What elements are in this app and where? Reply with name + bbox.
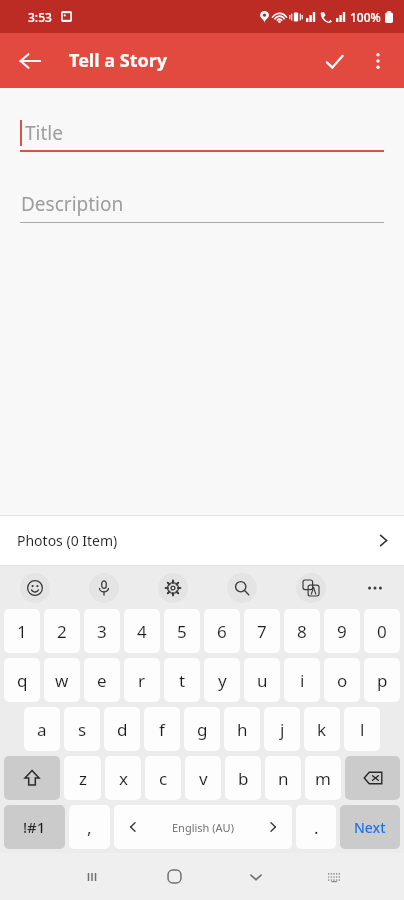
staticText: 9 (337, 620, 347, 643)
button[interactable]: m (305, 756, 341, 800)
button[interactable]: Hide keyboard (215, 853, 297, 900)
button[interactable]: Description (20, 185, 384, 223)
button[interactable]: s (64, 707, 100, 751)
button[interactable]: g (184, 707, 220, 751)
staticText: o (337, 669, 348, 692)
button[interactable]: f (144, 707, 180, 751)
staticText: z (79, 767, 87, 790)
button[interactable]: t (164, 658, 200, 702)
button[interactable]: Translate (276, 566, 345, 609)
staticText: , (87, 816, 92, 839)
button[interactable]: d (104, 707, 140, 751)
button[interactable]: q (4, 658, 40, 702)
staticText: 2 (57, 620, 67, 643)
staticText: Description (21, 191, 124, 217)
button[interactable]: Home (133, 853, 215, 900)
button[interactable]: Voice input (69, 566, 138, 609)
staticText: 100% (350, 9, 381, 25)
staticText: 5 (177, 620, 187, 643)
button[interactable]: 2 (44, 609, 80, 653)
staticText: k (317, 718, 327, 741)
staticText: w (55, 669, 69, 692)
button[interactable]: i (284, 658, 320, 702)
button[interactable]: . (296, 805, 336, 849)
staticText: u (257, 669, 268, 692)
button[interactable]: l (344, 707, 380, 751)
button[interactable]: 3 (84, 609, 120, 653)
staticText: 7 (257, 620, 267, 643)
staticText: j (280, 718, 285, 741)
button[interactable]: u (244, 658, 280, 702)
staticText: f (159, 718, 165, 741)
button[interactable]: x (105, 756, 141, 800)
staticText: s (78, 718, 87, 741)
staticText: e (97, 669, 107, 692)
button[interactable]: Next (340, 805, 400, 849)
button[interactable]: b (225, 756, 261, 800)
button[interactable]: n (265, 756, 301, 800)
button[interactable]: 5 (164, 609, 200, 653)
staticText: 1 (17, 620, 27, 643)
button[interactable]: j (264, 707, 300, 751)
button[interactable]: o (324, 658, 360, 702)
staticText: i (300, 669, 305, 692)
button[interactable]: e (84, 658, 120, 702)
button[interactable]: Back (9, 40, 51, 82)
button[interactable]: Space, English (AU) (114, 805, 292, 849)
button[interactable]: Title (20, 114, 384, 152)
staticText: Photos (0 Item) (17, 531, 118, 550)
staticText: h (237, 718, 248, 741)
button[interactable]: 9 (324, 609, 360, 653)
button[interactable]: p (364, 658, 400, 702)
button[interactable]: 0 (364, 609, 400, 653)
button[interactable]: Photos (0 Item) (0, 516, 404, 565)
button[interactable]: More options (357, 40, 399, 82)
staticText: 3:53 (28, 9, 52, 25)
button[interactable]: k (304, 707, 340, 751)
staticText: 4 (137, 620, 147, 643)
button[interactable]: Change keyboard (297, 853, 371, 900)
button[interactable]: 6 (204, 609, 240, 653)
button[interactable]: a (24, 707, 60, 751)
staticText: r (138, 669, 146, 692)
button[interactable]: 7 (244, 609, 280, 653)
button[interactable]: More keyboard options (345, 566, 404, 609)
staticText: l (360, 718, 365, 741)
staticText: Next (354, 818, 386, 837)
button[interactable]: 4 (124, 609, 160, 653)
button[interactable]: v (185, 756, 221, 800)
staticText: Title (25, 120, 63, 146)
staticText: 6 (217, 620, 227, 643)
button[interactable]: h (224, 707, 260, 751)
staticText: d (117, 718, 128, 741)
button[interactable]: Emoji (0, 566, 69, 609)
staticText: q (17, 669, 28, 692)
staticText: v (199, 767, 208, 790)
button[interactable]: Shift (4, 756, 60, 800)
staticText: !#1 (23, 817, 46, 837)
button[interactable]: , (69, 805, 110, 849)
button[interactable]: 8 (284, 609, 320, 653)
button[interactable]: w (44, 658, 80, 702)
staticText: p (377, 669, 388, 692)
staticText: 8 (297, 620, 307, 643)
button[interactable]: Recent apps (50, 853, 133, 900)
staticText: Tell a Story (69, 48, 168, 73)
staticText: m (315, 767, 331, 790)
button[interactable]: Save (311, 38, 357, 84)
button[interactable]: y (204, 658, 240, 702)
button[interactable]: z (64, 756, 101, 800)
button[interactable]: r (124, 658, 160, 702)
staticText: English (AU) (172, 820, 234, 835)
button[interactable]: c (145, 756, 181, 800)
staticText: b (238, 767, 249, 790)
button[interactable]: Search (207, 566, 276, 609)
staticText: 3 (97, 620, 107, 643)
button[interactable]: !#1 (4, 805, 65, 849)
staticText: t (179, 669, 186, 692)
button[interactable]: Keyboard settings (138, 566, 207, 609)
button[interactable]: Backspace (345, 756, 400, 800)
staticText: n (278, 767, 289, 790)
staticText: a (37, 718, 47, 741)
button[interactable]: 1 (4, 609, 40, 653)
